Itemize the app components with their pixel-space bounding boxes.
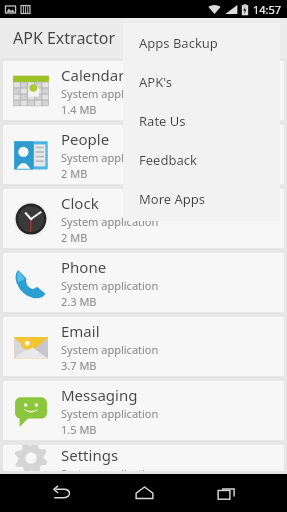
button[interactable]: Home bbox=[122, 474, 166, 512]
staticText: System application bbox=[61, 278, 159, 293]
button[interactable]: Feedback bbox=[123, 140, 280, 179]
button[interactable]: Settings bbox=[3, 445, 284, 471]
staticText: 2 MB bbox=[61, 230, 88, 245]
staticText: System application bbox=[61, 86, 159, 101]
button[interactable]: Phone bbox=[3, 253, 284, 312]
staticText: People bbox=[61, 129, 110, 149]
staticText: 14:57 bbox=[253, 2, 282, 17]
button[interactable]: People bbox=[3, 125, 284, 184]
staticText: Clock bbox=[61, 193, 99, 213]
staticText: 1.5 MB bbox=[61, 422, 97, 437]
button[interactable]: Calendar bbox=[3, 61, 284, 120]
staticText: 2.3 MB bbox=[61, 294, 97, 309]
staticText: Messaging bbox=[61, 385, 138, 405]
staticText: Phone bbox=[61, 257, 107, 277]
staticText: Settings bbox=[61, 445, 119, 465]
staticText: 2 MB bbox=[61, 166, 88, 181]
button[interactable]: Email bbox=[3, 317, 284, 376]
button[interactable]: Rate Us bbox=[123, 101, 280, 140]
staticText: APK's bbox=[139, 73, 172, 91]
staticText: System application bbox=[61, 342, 159, 357]
staticText: System application bbox=[61, 150, 159, 165]
button[interactable]: Recent apps bbox=[204, 474, 248, 512]
staticText: System application bbox=[61, 466, 159, 471]
staticText: 3.7 MB bbox=[61, 358, 97, 373]
staticText: More Apps bbox=[139, 190, 206, 208]
button[interactable]: Messaging bbox=[3, 381, 284, 440]
staticText: 1.4 MB bbox=[61, 102, 97, 117]
staticText: System application bbox=[61, 214, 159, 229]
staticText: System application bbox=[61, 406, 159, 421]
staticText: Rate Us bbox=[139, 112, 186, 130]
button[interactable]: APK's bbox=[123, 62, 280, 101]
staticText: Calendar bbox=[61, 65, 125, 85]
staticText: Apps Backup bbox=[139, 34, 218, 52]
staticText: Email bbox=[61, 321, 100, 341]
button[interactable]: Apps Backup bbox=[123, 23, 280, 62]
staticText: Feedback bbox=[139, 151, 197, 169]
button[interactable]: More Apps bbox=[123, 179, 280, 218]
button[interactable]: Clock bbox=[3, 189, 284, 248]
staticText: APK Extractor bbox=[13, 27, 116, 49]
button[interactable]: Back bbox=[39, 474, 83, 512]
